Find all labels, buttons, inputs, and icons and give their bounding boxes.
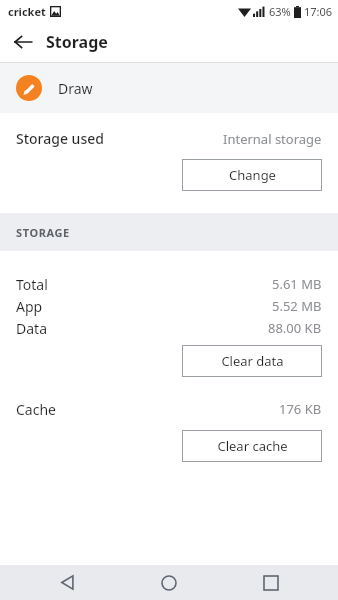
staticText: 63% [269, 4, 291, 19]
button[interactable]: Back [6, 25, 40, 59]
staticText: Total [16, 275, 48, 294]
staticText: Storage used [16, 129, 104, 148]
button[interactable]: Recent apps [236, 565, 306, 600]
staticText: Data [16, 319, 47, 338]
staticText: 5.61 MB [272, 275, 322, 293]
button[interactable]: Storage used [0, 127, 338, 150]
staticText: Cache [16, 400, 56, 419]
staticText: Draw [58, 79, 93, 98]
staticText: Storage [46, 31, 108, 53]
button[interactable]: Home [134, 565, 204, 600]
button[interactable]: Draw [0, 63, 338, 113]
staticText: Internal storage [223, 130, 322, 148]
staticText: cricket [8, 4, 46, 19]
staticText: Clear data [221, 352, 284, 370]
button[interactable]: Change [182, 159, 322, 191]
staticText: 176 KB [279, 400, 322, 418]
staticText: Change [229, 166, 276, 184]
button[interactable]: Back [32, 565, 102, 600]
staticText: STORAGE [16, 225, 70, 240]
staticText: App [16, 297, 43, 316]
staticText: 17:06 [304, 4, 333, 19]
staticText: 88.00 KB [268, 319, 322, 337]
staticText: 5.52 MB [272, 297, 322, 315]
staticText: Clear cache [217, 437, 288, 455]
button[interactable]: Clear data [182, 345, 322, 377]
button[interactable]: Clear cache [182, 430, 322, 462]
